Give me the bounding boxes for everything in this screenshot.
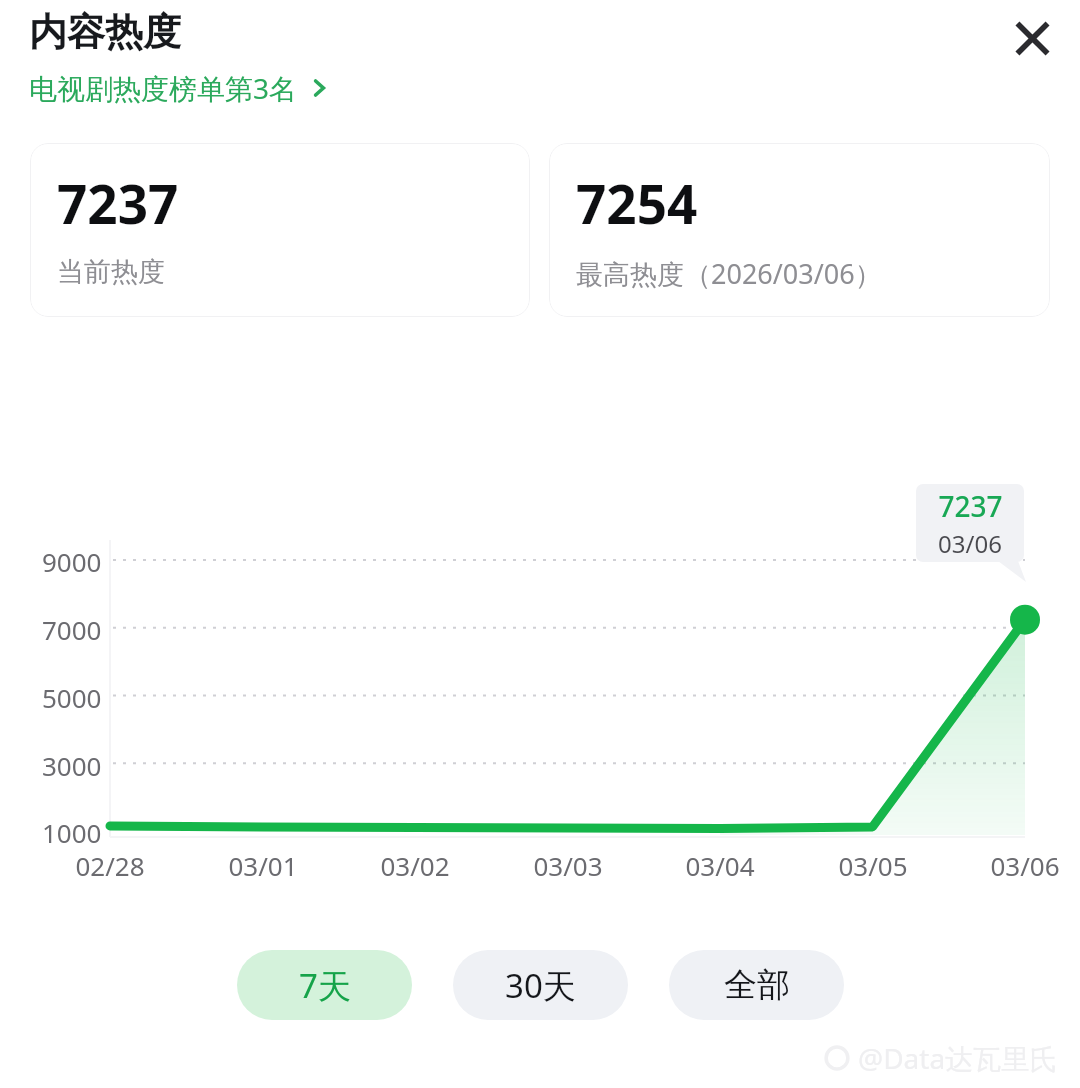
staticText: 03/01 [228, 848, 298, 883]
button[interactable]: Close [999, 5, 1065, 71]
button[interactable]: 7254 [549, 143, 1050, 317]
staticText: 30天 [505, 963, 576, 1008]
button[interactable]: 7天 [237, 950, 412, 1020]
staticText: 7天 [299, 963, 351, 1008]
staticText: 5000 [42, 680, 102, 715]
staticText: 内容热度 [29, 8, 181, 56]
staticText: 03/03 [533, 848, 603, 883]
staticText: 7000 [42, 612, 102, 647]
staticText: 7237 [938, 487, 1003, 525]
staticText: 03/04 [685, 848, 755, 883]
staticText: 当前热度 [57, 255, 165, 289]
staticText: 最高热度（2026/03/06） [576, 255, 882, 292]
staticText: 03/05 [838, 848, 908, 883]
staticText: 7237 [57, 167, 179, 239]
staticText: 全部 [724, 964, 790, 1006]
button[interactable]: 全部 [669, 950, 844, 1020]
staticText: 03/06 [990, 848, 1060, 883]
button[interactable]: 7237 [30, 143, 530, 317]
staticText: 3000 [42, 748, 102, 783]
button[interactable]: 电视剧热度榜单第3名 [29, 66, 329, 110]
staticText: 03/02 [380, 848, 450, 883]
staticText: 03/06 [938, 527, 1002, 560]
staticText: 9000 [42, 544, 102, 579]
staticText: 电视剧热度榜单第3名 [29, 69, 298, 107]
staticText: @Data达瓦里氏 [858, 1039, 1058, 1077]
button[interactable]: 30天 [453, 950, 628, 1020]
staticText: 02/28 [75, 848, 145, 883]
staticText: 7254 [576, 167, 698, 239]
staticText: 1000 [42, 815, 102, 850]
